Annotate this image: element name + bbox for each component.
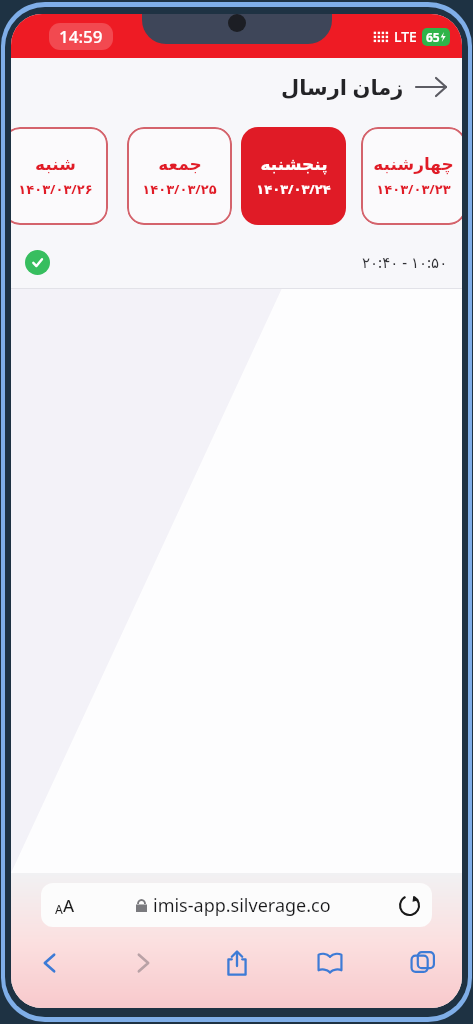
- button[interactable]: زمان ارسال: [281, 70, 448, 104]
- button[interactable]: Forward: [122, 942, 164, 984]
- button[interactable]: Back: [29, 942, 71, 984]
- staticText: ۱۴۰۳/۰۳/۲۵: [142, 180, 217, 198]
- button[interactable]: Bookmarks: [309, 942, 351, 984]
- staticText: LTE: [394, 27, 417, 46]
- button[interactable]: چهارشنبه: [361, 127, 462, 225]
- button[interactable]: پنجشنبه: [241, 127, 346, 225]
- staticText: imis-app.silverage.co: [153, 893, 331, 918]
- staticText: پنجشنبه: [260, 154, 328, 174]
- button[interactable]: شنبه: [11, 127, 108, 225]
- other: Reload: [392, 888, 426, 922]
- staticText: شنبه: [35, 154, 76, 174]
- staticText: جمعه: [158, 154, 202, 174]
- staticText: ۲۰:۴۰ - ۱۰:۵۰: [362, 252, 448, 272]
- staticText: ۱۴۰۳/۰۳/۲۳: [376, 180, 451, 198]
- button[interactable]: Tabs: [402, 942, 444, 984]
- staticText: ۱۴۰۳/۰۳/۲۶: [18, 180, 93, 198]
- staticText: چهارشنبه: [373, 154, 454, 174]
- staticText: زمان ارسال: [281, 73, 404, 102]
- staticText: ۱۴۰۳/۰۳/۲۴: [256, 180, 331, 198]
- button[interactable]: جمعه: [127, 127, 232, 225]
- button[interactable]: Share: [216, 942, 258, 984]
- staticText: A: [55, 901, 63, 917]
- staticText: 65: [426, 29, 440, 45]
- staticText: 14:59: [59, 25, 103, 48]
- button[interactable]: Selected: [11, 236, 462, 288]
- button[interactable]: A: [41, 883, 432, 927]
- other: Back: [414, 70, 448, 104]
- staticText: A: [63, 894, 75, 917]
- other: Selected: [25, 250, 50, 275]
